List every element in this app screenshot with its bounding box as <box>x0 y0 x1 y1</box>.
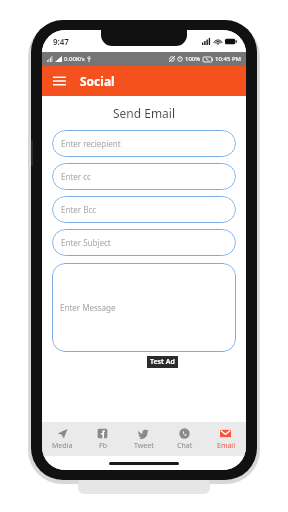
button[interactable]: Test Ad <box>147 356 178 368</box>
button[interactable]: Open navigation menu <box>48 70 70 92</box>
button[interactable]: Enter Subject <box>52 229 236 256</box>
button[interactable]: Enter reciepient <box>52 130 236 157</box>
staticText: Social <box>80 73 115 89</box>
staticText: Test Ad <box>150 357 175 367</box>
staticText: Enter Message <box>60 302 116 313</box>
staticText: Chat <box>177 441 193 451</box>
staticText: Email <box>217 441 235 451</box>
staticText: Enter reciepient <box>61 138 121 149</box>
staticText: Enter cc <box>61 171 91 182</box>
staticText: 9:47 <box>53 36 69 47</box>
staticText: Fb <box>99 441 107 451</box>
button[interactable]: Enter cc <box>52 163 236 190</box>
button[interactable]: Chat <box>164 422 205 456</box>
button[interactable]: Media <box>42 422 82 456</box>
button[interactable]: Email <box>205 422 246 456</box>
staticText: Send Email <box>52 105 236 121</box>
staticText: Media <box>52 441 73 451</box>
staticText: 10:45 PM <box>215 55 241 63</box>
button[interactable]: Tweet <box>123 422 164 456</box>
staticText: Enter Bcc <box>61 204 97 215</box>
staticText: Tweet <box>134 441 154 451</box>
button[interactable]: Fb <box>82 422 123 456</box>
staticText: Enter Subject <box>61 237 111 248</box>
staticText: 100% <box>185 55 201 63</box>
staticText: 0.00K/s <box>64 55 85 63</box>
button[interactable]: Enter Message <box>52 263 236 352</box>
button[interactable]: Enter Bcc <box>52 196 236 223</box>
